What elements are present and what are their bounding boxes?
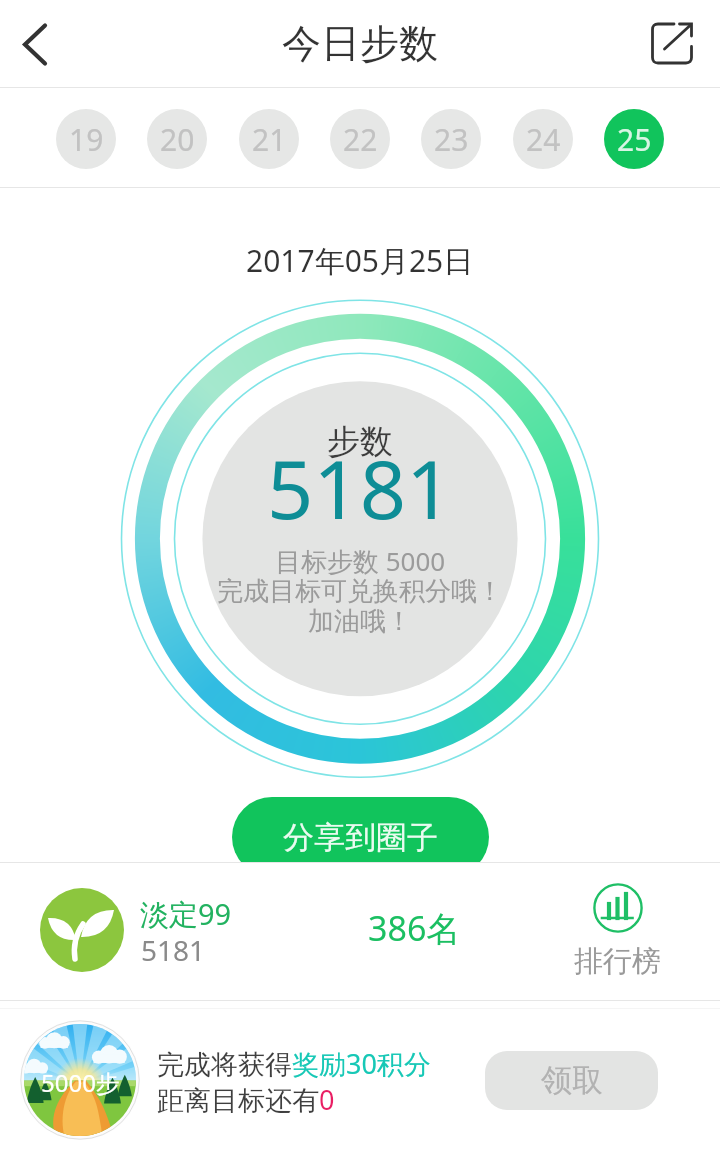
staticText: 386名 bbox=[368, 905, 461, 951]
staticText: 5181 bbox=[141, 931, 206, 969]
staticText: 2017年05月25日 bbox=[246, 240, 474, 281]
button[interactable]: 领取 bbox=[485, 1051, 658, 1110]
button[interactable]: 19 bbox=[56, 109, 116, 169]
button[interactable]: 21 bbox=[239, 109, 299, 169]
staticText: 分享到圈子 bbox=[283, 818, 438, 857]
staticText: 今日步数 bbox=[282, 19, 438, 68]
staticText: 5181 bbox=[267, 432, 453, 542]
button[interactable]: 排行榜 bbox=[569, 883, 666, 980]
button[interactable]: Share bbox=[640, 0, 720, 88]
staticText: 距离目标还有0 bbox=[157, 1081, 335, 1118]
staticText: 排行榜 bbox=[574, 943, 661, 980]
staticText: 5000步 bbox=[41, 1066, 120, 1099]
button[interactable]: 25 bbox=[604, 109, 664, 169]
staticText: 完成将获得奖励30积分 bbox=[157, 1045, 431, 1082]
staticText: 22 bbox=[343, 119, 378, 160]
button[interactable]: 20 bbox=[147, 109, 207, 169]
staticText: 步数 bbox=[327, 421, 393, 463]
button[interactable]: 22 bbox=[330, 109, 390, 169]
staticText: 目标步数 5000 完成目标可兑换积分哦！ 加油哦！ bbox=[217, 543, 503, 638]
staticText: 淡定99 bbox=[140, 894, 232, 934]
button[interactable]: Back bbox=[0, 0, 76, 88]
staticText: 23 bbox=[434, 119, 469, 160]
button[interactable]: 23 bbox=[421, 109, 481, 169]
staticText: 领取 bbox=[541, 1061, 603, 1100]
staticText: 21 bbox=[252, 119, 287, 160]
button[interactable]: 24 bbox=[513, 109, 573, 169]
button[interactable]: 分享到圈子 bbox=[232, 797, 489, 877]
staticText: 25 bbox=[617, 119, 652, 160]
staticText: 24 bbox=[526, 119, 561, 160]
staticText: 19 bbox=[69, 119, 104, 160]
staticText: 20 bbox=[160, 119, 195, 160]
